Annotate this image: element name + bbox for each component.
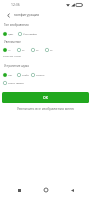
staticText: 2x [22,49,25,52]
button[interactable]: 1x [3,48,17,52]
staticText: Слабо [22,74,29,77]
button[interactable]: Слабо [17,73,31,77]
button[interactable]: Главный экран [39,183,53,197]
staticText: конфигурация [14,12,40,17]
button[interactable]: Недавние приложения [12,183,26,197]
staticText: 12:36 [11,2,20,7]
button[interactable]: 3x [31,48,45,52]
staticText: Фотография [23,33,37,36]
staticText: Нет [8,74,13,77]
staticText: OK [43,95,48,100]
button[interactable]: Очень тёмное [3,81,24,85]
staticText: 4x [50,49,53,52]
staticText: Очень тёмное [8,82,24,85]
staticText: Цвет [8,33,14,36]
button[interactable]: Назад [3,10,13,20]
button[interactable]: 2x [17,48,31,52]
staticText: 3x [36,49,39,52]
staticText: Тип изображения [4,23,29,27]
button[interactable]: OK [2,92,89,103]
staticText: Устранение шума [4,64,29,68]
button[interactable]: Назад [65,183,79,197]
staticText: 1x [8,49,11,52]
staticText: Увеличение [4,40,21,44]
staticText: Увеличить все изображения меню [17,106,74,111]
button[interactable]: Нет [3,73,17,77]
button[interactable]: Сильно [31,73,46,77]
button[interactable]: Цвет [3,32,18,36]
staticText: Качество «Авто» [3,55,22,58]
button[interactable]: 4x [45,48,59,52]
button[interactable]: Фотография [18,32,44,36]
staticText: Сильно [36,74,45,77]
